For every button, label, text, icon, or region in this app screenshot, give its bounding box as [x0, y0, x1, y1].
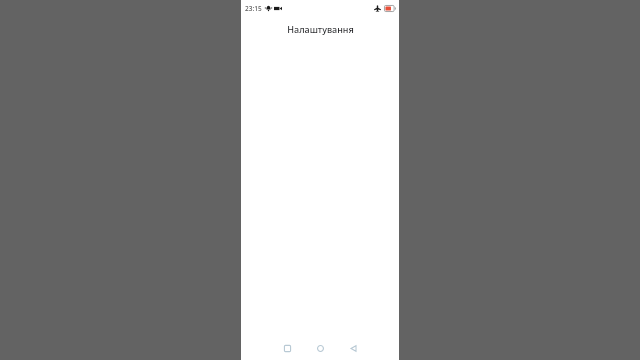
button[interactable]: Home — [308, 336, 332, 360]
button[interactable]: Recent apps — [275, 336, 299, 360]
staticText: 23:15 — [245, 4, 262, 13]
staticText: Налаштування — [287, 23, 354, 35]
button[interactable]: Back — [341, 336, 365, 360]
